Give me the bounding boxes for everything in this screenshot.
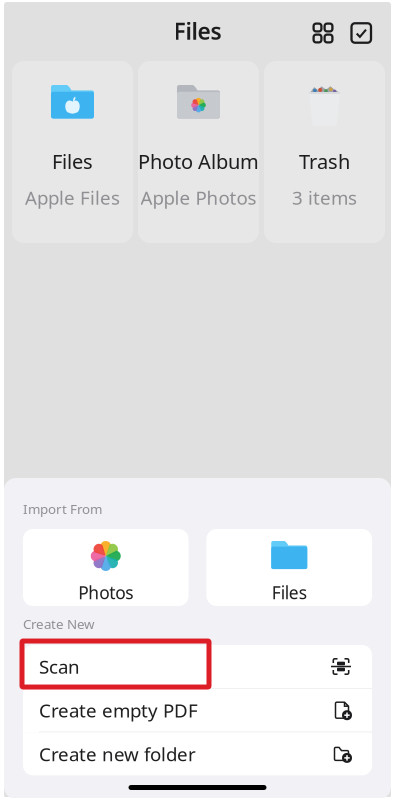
- button[interactable]: Select: [346, 18, 376, 48]
- staticText: Import From: [23, 500, 102, 518]
- staticText: Files: [52, 148, 93, 175]
- staticText: Files: [173, 16, 221, 46]
- button[interactable]: Photos: [23, 529, 188, 606]
- staticText: Apple Photos: [140, 185, 256, 210]
- button[interactable]: Grid view: [307, 17, 338, 48]
- staticText: Create new folder: [39, 741, 196, 766]
- button[interactable]: Scan: [23, 645, 372, 689]
- staticText: Photos: [78, 581, 133, 604]
- button[interactable]: Trash: [264, 61, 385, 243]
- button[interactable]: Create empty PDF: [23, 689, 372, 732]
- staticText: Trash: [299, 148, 350, 175]
- staticText: 3 items: [292, 185, 357, 210]
- button[interactable]: Files: [12, 61, 133, 243]
- button[interactable]: Create new folder: [23, 732, 372, 775]
- button[interactable]: Files: [206, 529, 372, 606]
- button[interactable]: Photo Album: [138, 61, 259, 243]
- staticText: Create empty PDF: [39, 698, 198, 723]
- staticText: Files: [272, 581, 307, 604]
- staticText: Scan: [39, 654, 80, 679]
- staticText: Apple Files: [25, 185, 120, 210]
- staticText: Create New: [23, 615, 94, 633]
- staticText: Photo Album: [138, 148, 259, 175]
